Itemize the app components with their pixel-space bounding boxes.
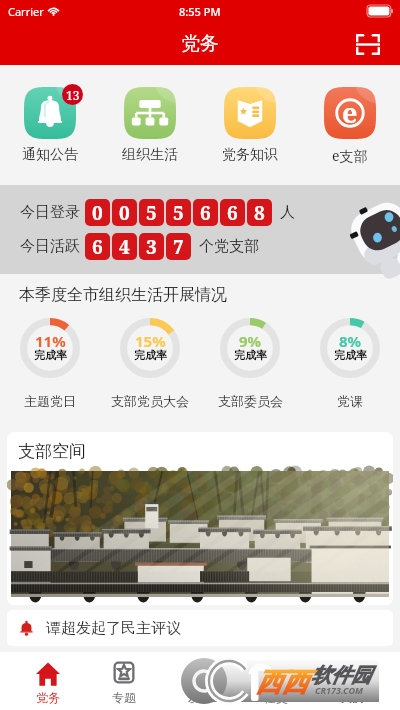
button[interactable]: 11% bbox=[0, 318, 100, 409]
staticText: 我的 bbox=[340, 690, 364, 705]
staticText: 6 bbox=[92, 234, 103, 260]
staticText: 15% bbox=[135, 331, 166, 351]
staticText: 7 bbox=[173, 234, 184, 260]
staticText: 党课 bbox=[337, 393, 363, 409]
button[interactable]: 15% bbox=[100, 318, 200, 409]
staticText: 软件园 bbox=[311, 663, 371, 688]
button[interactable]: 谭超发起了民主评议 bbox=[17, 610, 393, 646]
staticText: 完成率 bbox=[34, 348, 67, 362]
staticText: e支部 bbox=[332, 146, 368, 165]
staticText: 4 bbox=[119, 234, 130, 260]
staticText: 支部空间 bbox=[18, 441, 86, 462]
staticText: 完成率 bbox=[334, 348, 367, 362]
staticText: 本季度全市组织生活开展情况 bbox=[19, 285, 227, 305]
staticText: 主题党日 bbox=[24, 393, 76, 409]
staticText: 8% bbox=[339, 331, 362, 351]
staticText: 发布 bbox=[188, 690, 212, 705]
staticText: 党务知识 bbox=[222, 146, 278, 164]
staticText: 人 bbox=[280, 203, 295, 222]
staticText: 11% bbox=[35, 331, 66, 351]
staticText: 党务 bbox=[181, 32, 219, 56]
button[interactable]: 发布 bbox=[162, 652, 238, 710]
button[interactable]: 组织生活 bbox=[100, 86, 200, 170]
staticText: 3 bbox=[146, 234, 157, 260]
button[interactable]: 8% bbox=[300, 318, 400, 409]
button[interactable]: 党务知识 bbox=[200, 86, 300, 170]
button[interactable]: 9% bbox=[200, 318, 300, 409]
staticText: 5 bbox=[146, 200, 157, 226]
button[interactable]: 支部空间 bbox=[7, 432, 393, 605]
staticText: 今日登录 bbox=[20, 203, 80, 222]
staticText: 6 bbox=[200, 200, 211, 226]
staticText: 党务 bbox=[36, 690, 60, 705]
staticText: 完成率 bbox=[234, 348, 267, 362]
button[interactable]: 13 bbox=[0, 86, 100, 170]
staticText: 5 bbox=[173, 200, 184, 226]
button[interactable]: 专题 bbox=[86, 652, 162, 710]
button[interactable]: 扫一扫 bbox=[352, 28, 384, 60]
staticText: CR173.COM bbox=[315, 684, 363, 696]
staticText: 完成率 bbox=[134, 348, 167, 362]
staticText: 支部党员大会 bbox=[111, 393, 189, 409]
button[interactable]: e bbox=[300, 86, 400, 170]
staticText: 8:55 PM bbox=[179, 4, 221, 19]
staticText: 今日活跃 bbox=[20, 237, 80, 256]
staticText: 支部委员会 bbox=[218, 393, 283, 409]
staticText: 专题 bbox=[112, 690, 136, 705]
staticText: 组织生活 bbox=[122, 146, 178, 164]
button[interactable]: 我的 bbox=[314, 652, 390, 710]
staticText: 8 bbox=[254, 200, 265, 226]
staticText: 通知公告 bbox=[22, 146, 78, 164]
staticText: e bbox=[342, 94, 358, 131]
staticText: 0 bbox=[119, 200, 130, 226]
staticText: 6 bbox=[227, 200, 238, 226]
staticText: 谭超发起了民主评议 bbox=[46, 619, 181, 638]
staticText: Carrier bbox=[8, 4, 44, 19]
staticText: 西西 bbox=[256, 666, 308, 699]
staticText: 9% bbox=[239, 331, 262, 351]
button[interactable]: 社交 bbox=[238, 652, 314, 710]
staticText: 13 bbox=[66, 87, 80, 103]
staticText: 社交 bbox=[264, 690, 288, 705]
button[interactable]: 党务 bbox=[10, 652, 86, 710]
staticText: 个党支部 bbox=[199, 237, 259, 256]
staticText: 0 bbox=[92, 200, 103, 226]
